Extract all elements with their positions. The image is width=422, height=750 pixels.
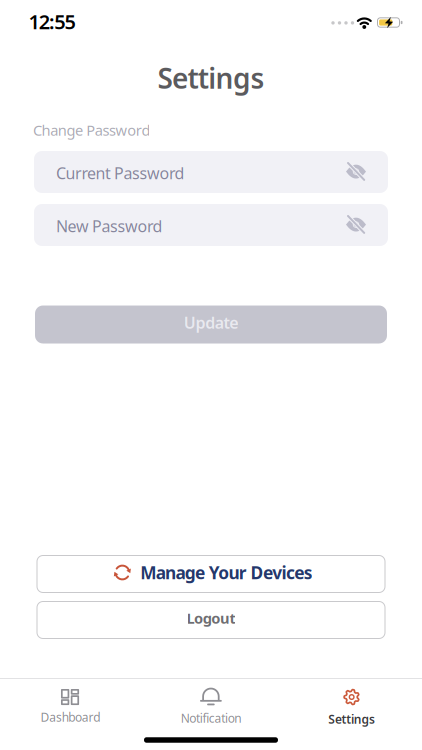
staticText: 12:55 bbox=[29, 8, 75, 35]
staticText: Update bbox=[184, 312, 238, 333]
button[interactable]: Logout bbox=[37, 601, 385, 638]
staticText: Current Password bbox=[56, 162, 184, 184]
staticText: Notification bbox=[181, 710, 241, 726]
staticText: Dashboard bbox=[40, 709, 100, 725]
staticText: Change Password bbox=[33, 120, 150, 140]
staticText: Settings bbox=[158, 59, 264, 97]
staticText: Manage Your Devices bbox=[140, 561, 313, 584]
staticText: New Password bbox=[56, 215, 162, 237]
button[interactable]: Notification bbox=[141, 688, 281, 726]
button[interactable]: Settings bbox=[281, 687, 422, 727]
staticText: Logout bbox=[186, 608, 235, 628]
button[interactable]: Show New Password bbox=[343, 214, 369, 236]
button[interactable]: Show Current Password bbox=[343, 161, 369, 183]
button[interactable]: Update bbox=[35, 305, 387, 343]
button[interactable]: Dashboard bbox=[0, 689, 141, 725]
staticText: Settings bbox=[328, 711, 375, 727]
button[interactable]: Manage Your Devices bbox=[37, 555, 385, 592]
